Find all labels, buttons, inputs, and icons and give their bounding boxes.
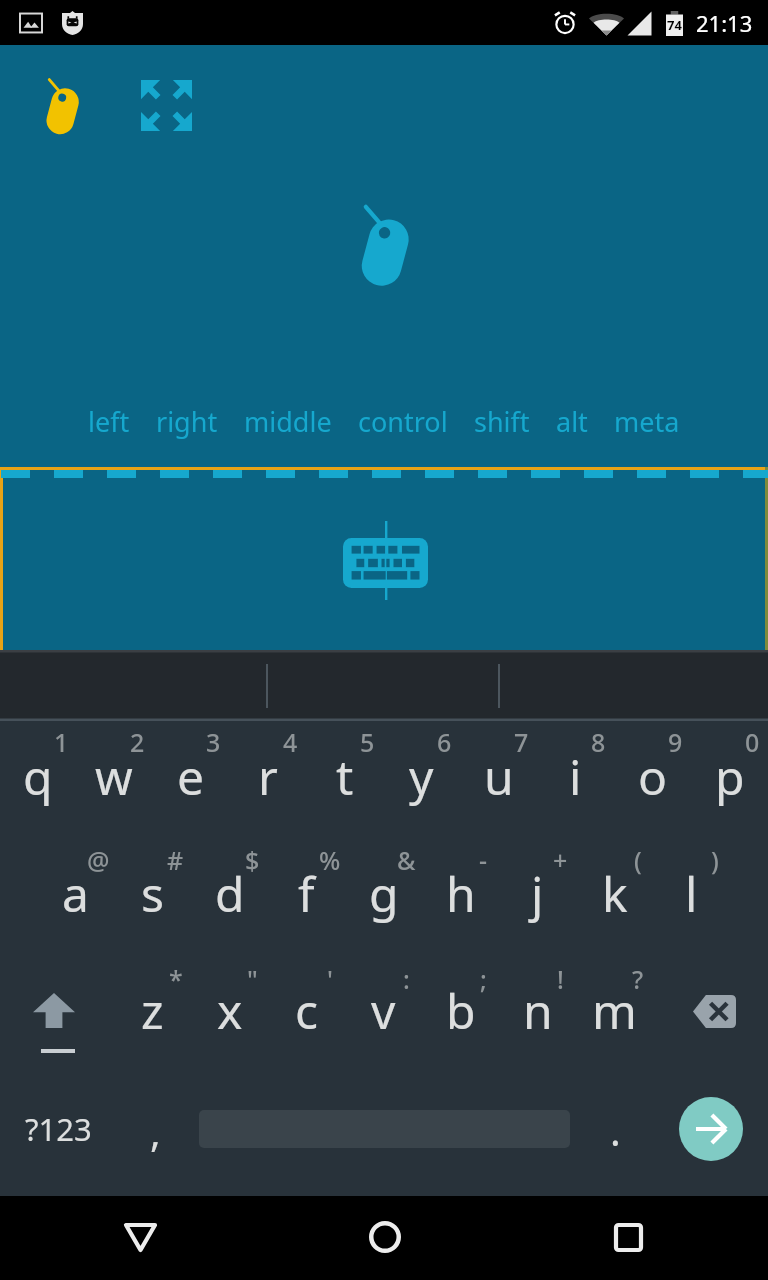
button[interactable]: middle (231, 395, 345, 448)
staticText: z (141, 978, 164, 1043)
staticText: shift (474, 403, 530, 440)
staticText: 0 (745, 725, 760, 759)
button[interactable]: 1 (0, 721, 76, 839)
staticText: ( (634, 843, 642, 877)
staticText: ? (632, 962, 644, 996)
button[interactable]: ) (653, 839, 730, 958)
staticText: ) (711, 843, 719, 877)
staticText: & (397, 843, 416, 877)
staticText: alt (556, 403, 588, 440)
staticText: @ (87, 843, 110, 877)
button[interactable]: ? (576, 958, 653, 1077)
staticText: 6 (437, 725, 452, 759)
staticText: 9 (668, 725, 683, 759)
staticText: control (358, 403, 448, 440)
staticText: " (247, 962, 258, 996)
button[interactable]: 9 (614, 721, 691, 839)
staticText: left (88, 403, 130, 440)
staticText: 5 (360, 725, 375, 759)
button[interactable]: 7 (460, 721, 537, 839)
staticText: 7 (514, 725, 529, 759)
button[interactable]: # (114, 839, 191, 958)
staticText: i (569, 744, 582, 809)
staticText: n (523, 978, 553, 1043)
button[interactable]: Enter (655, 1077, 768, 1196)
staticText: 4 (283, 725, 298, 759)
button[interactable]: ! (499, 958, 576, 1077)
button[interactable]: % (268, 839, 345, 958)
button[interactable]: 3 (152, 721, 229, 839)
button[interactable]: right (143, 395, 231, 448)
button[interactable]: control (345, 395, 461, 448)
staticText: r (258, 744, 278, 809)
button[interactable]: 8 (537, 721, 614, 839)
button[interactable]: 6 (383, 721, 460, 839)
staticText: s (141, 861, 164, 926)
staticText: u (484, 744, 514, 809)
staticText: 3 (206, 725, 221, 759)
staticText: * (169, 962, 183, 996)
button[interactable]: 0 (691, 721, 768, 839)
button[interactable]: Shift (0, 958, 114, 1077)
staticText: q (23, 744, 53, 809)
staticText: w (95, 744, 133, 809)
button[interactable]: : (345, 958, 422, 1077)
button[interactable]: Space (199, 1077, 570, 1196)
button[interactable]: ?123 (0, 1077, 120, 1196)
staticText: - (479, 843, 488, 877)
staticText: h (446, 861, 476, 926)
staticText: : (403, 962, 410, 996)
staticText: 74 (667, 16, 682, 34)
button[interactable]: Fullscreen (116, 65, 216, 145)
button[interactable]: ; (422, 958, 499, 1077)
button[interactable]: Home (329, 1196, 441, 1280)
button[interactable]: Mouse mode (17, 61, 107, 151)
staticText: d (215, 861, 245, 926)
staticText: . (610, 1103, 621, 1157)
button[interactable]: @ (37, 839, 114, 958)
staticText: # (167, 843, 184, 877)
button[interactable]: 2 (76, 721, 152, 839)
staticText: ?123 (25, 1108, 92, 1150)
button[interactable]: Back (84, 1196, 196, 1280)
button[interactable]: meta (601, 395, 693, 448)
staticText: f (298, 861, 315, 926)
button[interactable]: , (120, 1077, 199, 1196)
staticText: 1 (54, 725, 69, 759)
staticText: % (319, 843, 341, 877)
button[interactable]: " (191, 958, 268, 1077)
staticText: k (602, 861, 628, 926)
staticText: $ (245, 843, 260, 877)
button[interactable]: 5 (306, 721, 383, 839)
staticText: c (295, 978, 319, 1043)
staticText: e (177, 744, 205, 809)
button[interactable]: . (570, 1077, 655, 1196)
staticText: 21:13 (696, 8, 753, 38)
staticText: x (217, 978, 243, 1043)
staticText: y (409, 744, 434, 809)
button[interactable]: - (422, 839, 499, 958)
staticText: meta (614, 403, 680, 440)
button[interactable]: 4 (229, 721, 306, 839)
staticText: g (369, 861, 399, 926)
button[interactable]: ' (268, 958, 345, 1077)
staticText: middle (244, 403, 332, 440)
button[interactable]: Recents (572, 1196, 684, 1280)
staticText: right (156, 403, 218, 440)
staticText: l (685, 861, 698, 926)
button[interactable]: * (114, 958, 191, 1077)
button[interactable]: $ (191, 839, 268, 958)
button[interactable]: alt (543, 395, 601, 448)
staticText: p (715, 744, 745, 809)
button[interactable]: Backspace (653, 958, 768, 1077)
staticText: m (592, 978, 637, 1043)
button[interactable]: & (345, 839, 422, 958)
button[interactable]: ( (576, 839, 653, 958)
staticText: v (371, 978, 396, 1043)
button[interactable]: + (499, 839, 576, 958)
button[interactable]: left (75, 395, 143, 448)
staticText: , (150, 1104, 161, 1158)
button[interactable]: shift (461, 395, 543, 448)
staticText: t (336, 744, 354, 809)
staticText: 2 (130, 725, 145, 759)
